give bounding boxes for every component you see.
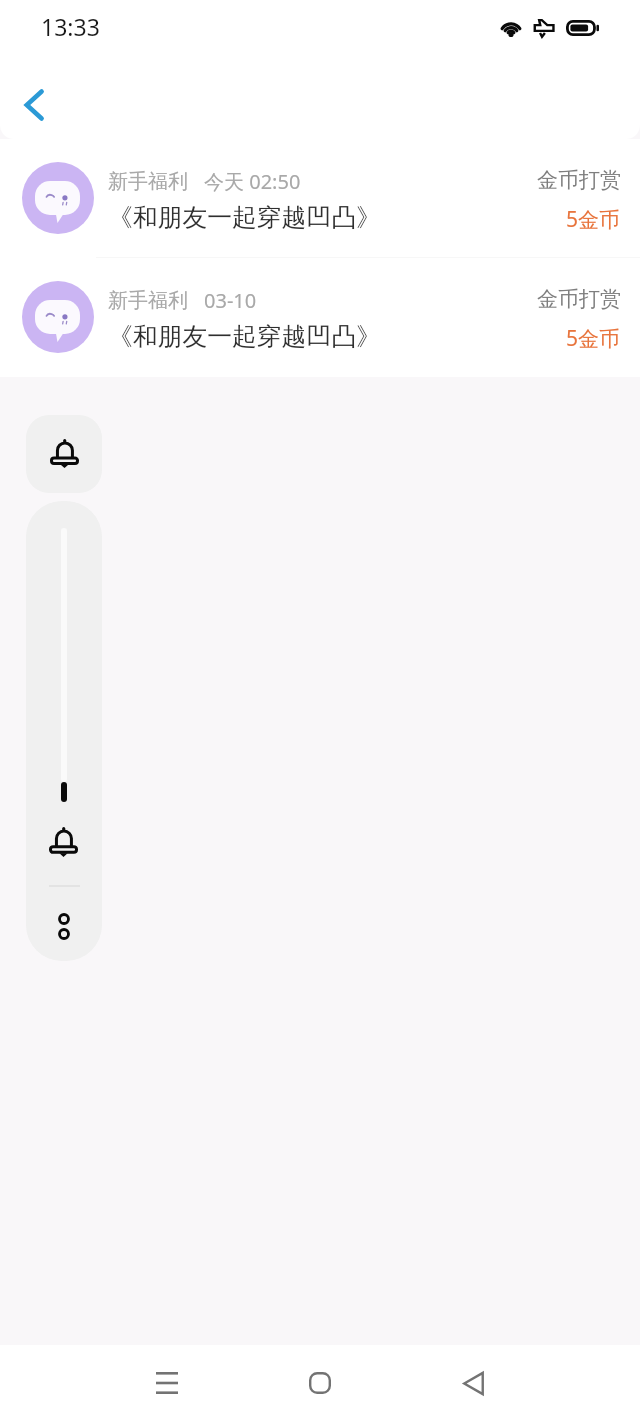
- button[interactable]: 新手福利: [0, 258, 640, 376]
- button[interactable]: Back: [6, 77, 62, 133]
- button[interactable]: Recents: [137, 1353, 197, 1413]
- button[interactable]: 新手福利: [0, 139, 640, 257]
- staticText: 金币打赏: [537, 286, 621, 312]
- button[interactable]: Back: [443, 1353, 503, 1413]
- staticText: 《和朋友一起穿越凹凸》: [108, 202, 381, 233]
- staticText: 新手福利: [108, 169, 188, 194]
- staticText: 今天 02:50: [204, 168, 301, 195]
- staticText: 13:33: [41, 11, 100, 42]
- staticText: 金币打赏: [537, 167, 621, 193]
- button[interactable]: More options: [48, 906, 80, 948]
- staticText: 03-10: [204, 287, 257, 314]
- staticText: 5金币: [566, 324, 621, 353]
- button[interactable]: Home: [290, 1353, 350, 1413]
- button[interactable]: Ringer mode: [26, 415, 102, 493]
- staticText: 新手福利: [108, 288, 188, 313]
- staticText: 《和朋友一起穿越凹凸》: [108, 321, 381, 352]
- staticText: 5金币: [566, 205, 621, 234]
